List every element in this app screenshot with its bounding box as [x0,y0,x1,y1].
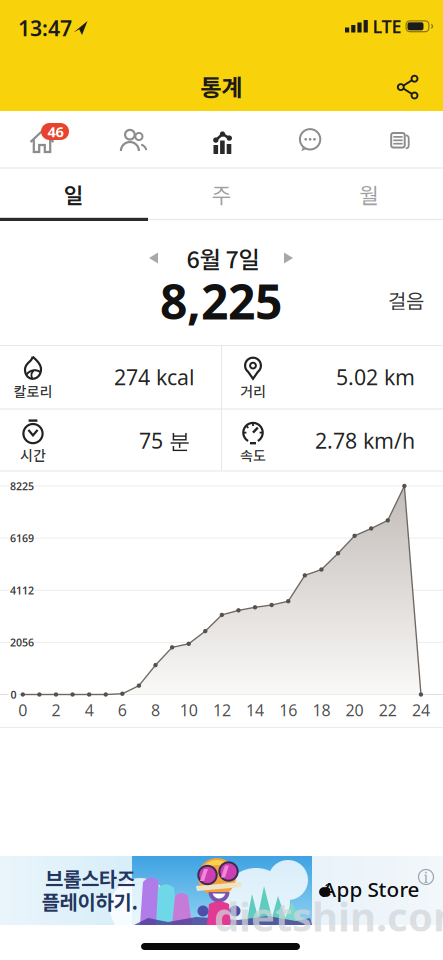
staticText: 주 [211,179,231,209]
button[interactable]: 광고 정보 [416,867,436,887]
staticText: i [423,867,428,887]
staticText: 6169 [10,531,34,545]
staticText: 시간 [20,445,46,465]
staticText: 5.02 km [336,362,415,392]
staticText: 칼로리 [13,381,52,401]
staticText: 걸음 [388,285,424,314]
button[interactable]: 통계 [177,111,266,168]
button[interactable]: 뉴스 [354,111,443,168]
staticText: 2056 [10,635,34,650]
staticText: 8 [151,699,160,721]
staticText: 속도 [240,445,266,465]
staticText: 274 kcal [114,362,195,392]
button[interactable]: 채팅 [266,111,354,168]
staticText: 12 [213,699,231,721]
staticText: 0 [18,699,27,721]
staticText: 일 [64,179,84,209]
staticText: 브롤스타즈 [45,863,135,892]
staticText: 24 [412,699,430,721]
staticText: 8225 [10,479,34,493]
staticText: 6월 7일 [186,241,259,275]
staticText: 월 [359,179,379,209]
staticText: dietshin.com [214,889,443,943]
staticText: LTE [372,14,401,38]
staticText: 8,225 [160,268,282,334]
staticText: 46 [47,121,63,141]
button[interactable]: 일 [0,169,148,219]
staticText: 거리 [240,381,266,401]
button[interactable]: 브롤스타즈 [0,856,443,925]
button[interactable]: 다음 날짜 [284,252,293,263]
staticText: 0 [10,687,16,702]
button[interactable]: 이전 날짜 [149,252,158,263]
button[interactable]: 월 [295,169,443,219]
staticText: 2.78 km/h [315,426,415,455]
staticText: 18 [312,699,330,721]
button[interactable]: 주 [148,169,295,219]
staticText: 4 [85,699,94,721]
staticText: 10 [180,699,198,721]
staticText: 75 분 [139,426,190,455]
staticText: 13:47 [18,13,72,43]
staticText: 20 [346,699,364,721]
button[interactable]: 친구 [89,111,177,168]
staticText: 16 [279,699,297,721]
button[interactable]: 홈 [0,111,89,168]
button[interactable]: 공유 [394,72,421,101]
staticText: 6 [118,699,127,721]
staticText: 4112 [10,583,34,597]
staticText: App Store [322,875,419,903]
staticText: 14 [246,699,264,721]
staticText: 2 [51,699,60,721]
staticText: 통계 [200,69,242,103]
staticText: 22 [379,699,397,721]
staticText: 플레이하기. [41,886,138,915]
